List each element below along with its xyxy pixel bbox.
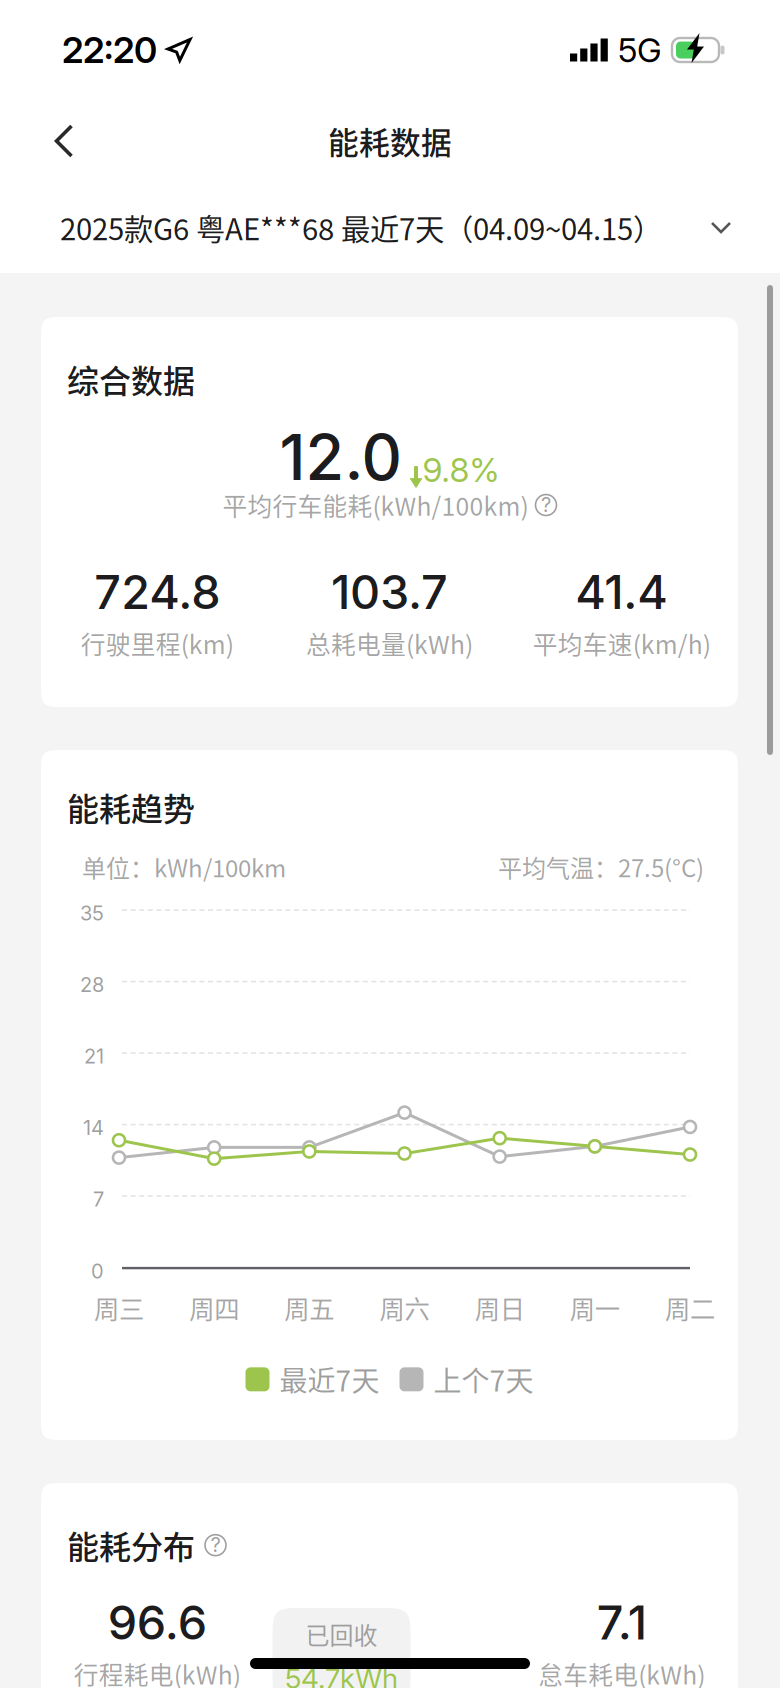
staticText: 周四: [189, 1289, 239, 1326]
staticText: 周三: [94, 1289, 144, 1326]
staticText: 周五: [284, 1289, 334, 1326]
staticText: 22:20: [62, 28, 157, 72]
staticText: 周日: [475, 1289, 525, 1326]
staticText: 能耗趋势: [67, 784, 195, 830]
staticText: 平均行车能耗(kWh/100km): [222, 487, 528, 523]
staticText: 41.4: [575, 564, 668, 620]
staticText: 周六: [379, 1289, 429, 1326]
button[interactable]: Back: [0, 103, 144, 179]
staticText: 7.1: [597, 1594, 647, 1651]
staticText: 5G: [618, 30, 662, 70]
staticText: 21: [84, 1044, 104, 1068]
staticText: 96.6: [108, 1594, 207, 1651]
staticText: 综合数据: [67, 356, 195, 402]
staticText: 7: [93, 1187, 104, 1211]
staticText: 能耗分布: [67, 1522, 195, 1568]
staticText: 单位：kWh/100km: [82, 849, 286, 884]
button[interactable]: 2025款G6 粤AE***68 最近7天（04.09~04.15）: [0, 182, 780, 273]
staticText: ?: [210, 1533, 220, 1557]
staticText: 28: [80, 973, 104, 997]
staticText: 已回收: [305, 1617, 377, 1651]
staticText: 54.7kWh: [285, 1661, 398, 1688]
staticText: 周一: [570, 1289, 620, 1326]
staticText: 行驶里程(km): [81, 625, 234, 661]
staticText: 12.0: [279, 419, 401, 495]
staticText: 怠车耗电(kWh): [538, 1656, 705, 1688]
staticText: 14: [83, 1116, 104, 1140]
staticText: 103.7: [331, 564, 448, 620]
staticText: 35: [80, 901, 104, 925]
staticText: 平均车速(km/h): [533, 625, 711, 661]
staticText: 724.8: [94, 564, 220, 620]
staticText: 能耗数据: [328, 119, 452, 163]
staticText: 2025款G6 粤AE***68 最近7天（04.09~04.15）: [60, 206, 662, 249]
staticText: 9.8%: [422, 450, 499, 490]
staticText: 周二: [665, 1289, 715, 1326]
staticText: 总耗电量(kWh): [306, 625, 473, 661]
staticText: 最近7天: [279, 1359, 379, 1400]
staticText: 上个7天: [433, 1359, 533, 1400]
staticText: ?: [541, 492, 551, 517]
staticText: 0: [91, 1259, 104, 1283]
staticText: 平均气温：27.5(°C): [498, 849, 704, 884]
staticText: 行程耗电(kWh): [74, 1656, 241, 1688]
